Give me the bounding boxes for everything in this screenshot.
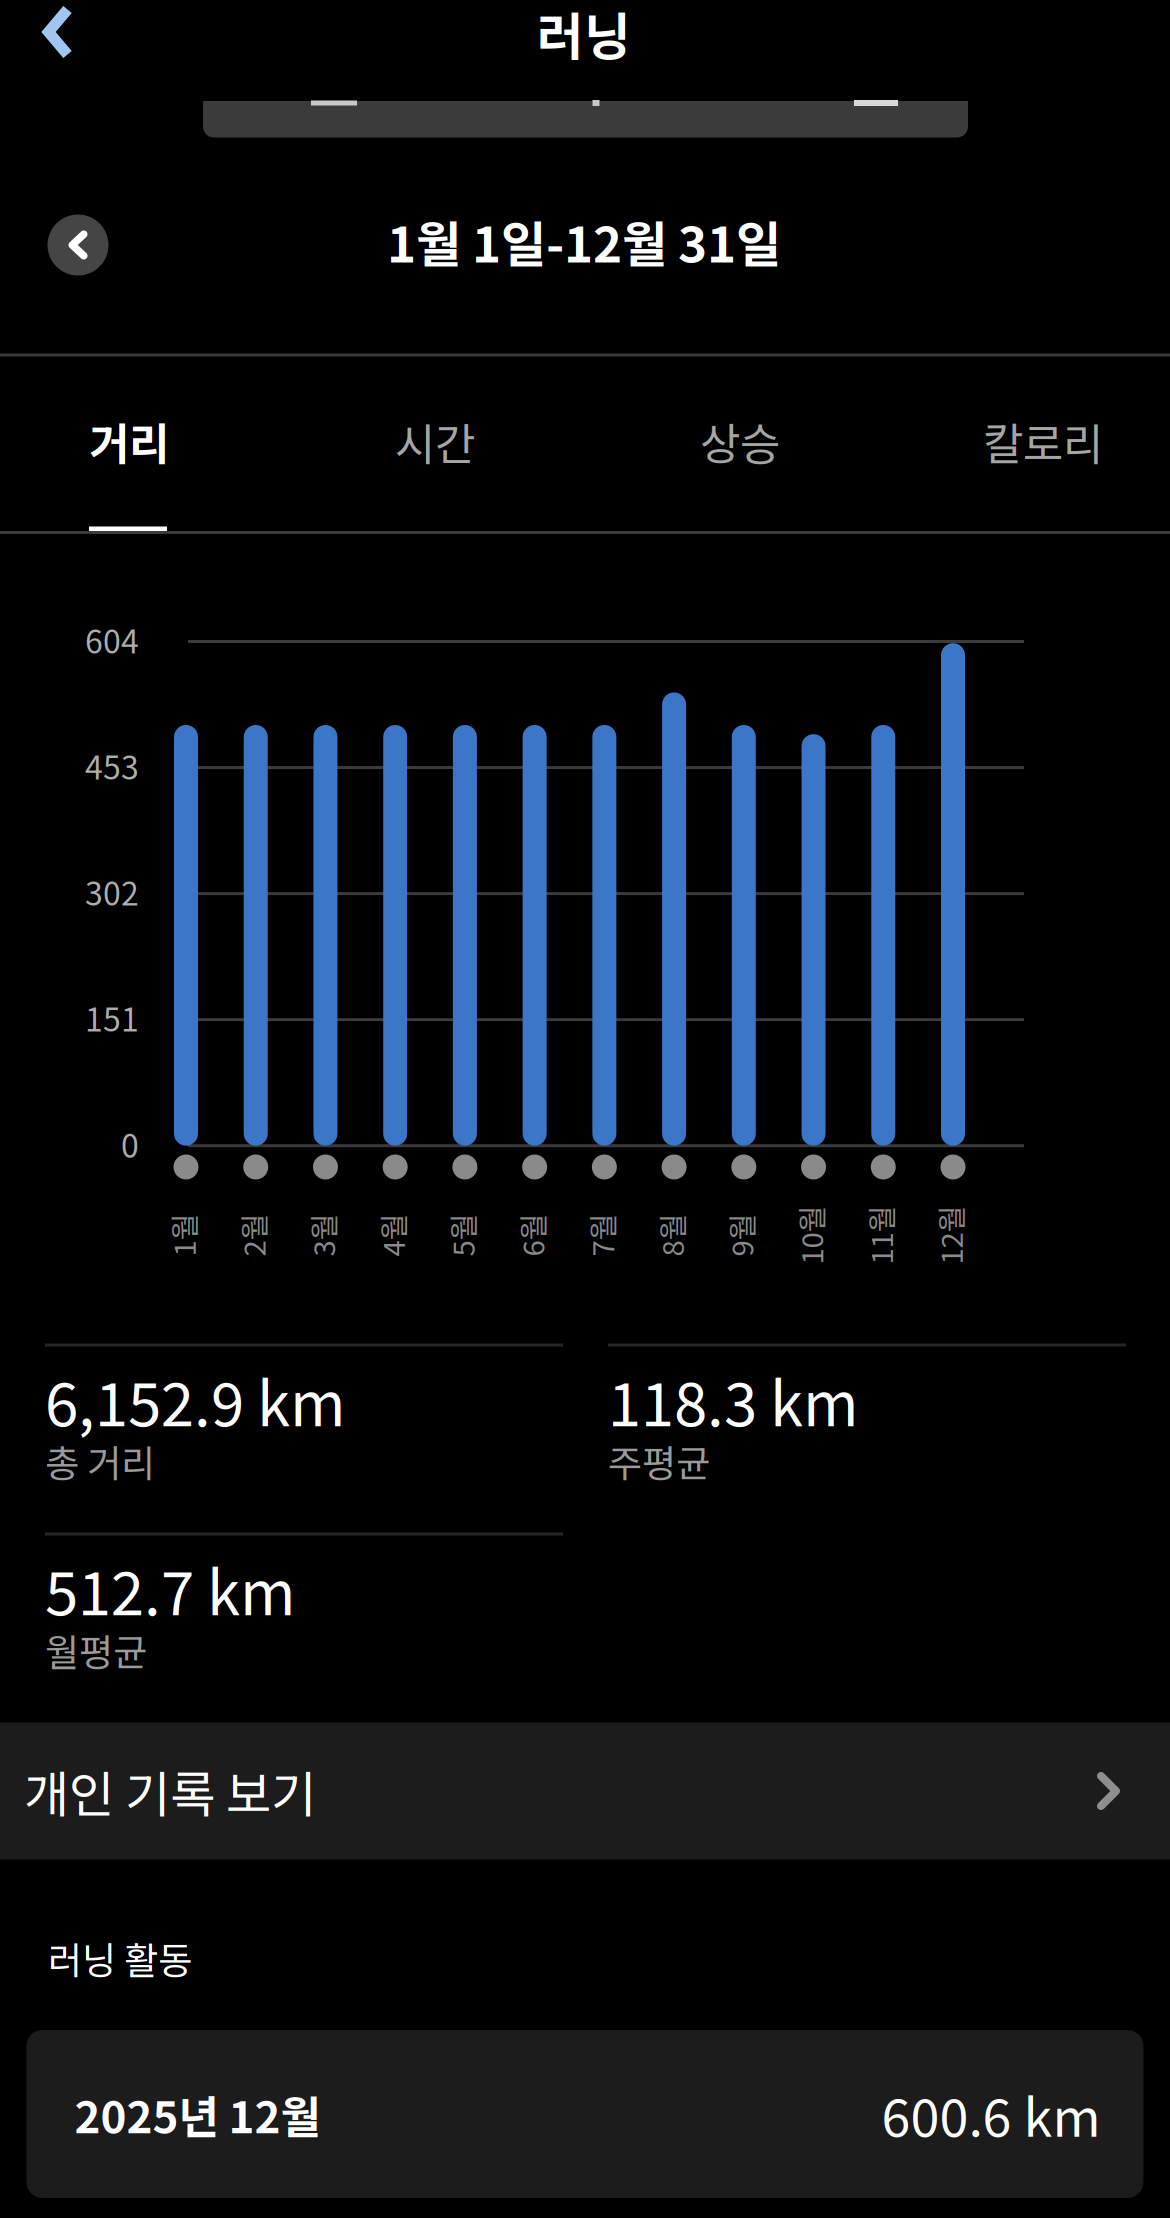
staticText: 2025년 12월	[74, 2082, 320, 2146]
staticText: 8월	[650, 1214, 693, 1256]
staticText: 10월	[781, 1214, 840, 1256]
staticText: 6,152.9 km	[45, 1357, 346, 1443]
button[interactable]: 상승	[590, 353, 890, 529]
staticText: 7월	[580, 1214, 623, 1256]
staticText: 12월	[920, 1214, 979, 1256]
staticText: 9월	[719, 1214, 762, 1256]
button[interactable]: Previous period	[47, 214, 108, 275]
staticText: 개인 기록 보기	[24, 1755, 316, 1827]
staticText: 거리	[89, 409, 169, 473]
staticText: 453	[85, 742, 139, 789]
staticText: 6월	[510, 1214, 553, 1256]
staticText: 604	[85, 616, 139, 663]
staticText: 3월	[301, 1214, 344, 1256]
staticText: 302	[85, 868, 139, 915]
staticText: 시간	[395, 409, 475, 473]
staticText: 1월 1일-12월 31일	[387, 205, 781, 277]
staticText: 512.7 km	[45, 1546, 296, 1632]
staticText: 월평균	[45, 1623, 147, 1677]
staticText: 5월	[440, 1214, 483, 1256]
staticText: 151	[85, 994, 139, 1041]
staticText: 총 거리	[45, 1434, 155, 1488]
staticText: 2월	[231, 1214, 274, 1256]
button[interactable]: 2025년 12월	[26, 2030, 1143, 2198]
staticText: 주평균	[608, 1434, 710, 1488]
staticText: 상승	[700, 409, 780, 473]
button[interactable]: 개인 기록 보기	[0, 1722, 1170, 1859]
button[interactable]: Back	[2, 0, 114, 74]
staticText: 1월	[161, 1214, 204, 1256]
button[interactable]: 거리	[0, 353, 279, 529]
staticText: 600.6 km	[881, 2076, 1100, 2152]
staticText: 0	[121, 1120, 139, 1167]
staticText: 118.3 km	[608, 1357, 859, 1443]
button[interactable]: 칼로리	[893, 353, 1170, 529]
staticText: 러닝	[537, 0, 631, 70]
staticText: 11월	[851, 1214, 910, 1256]
staticText: 4월	[371, 1214, 414, 1256]
staticText: 칼로리	[983, 409, 1103, 473]
staticText: 러닝 활동	[48, 1931, 192, 1985]
button[interactable]: 시간	[285, 353, 585, 529]
